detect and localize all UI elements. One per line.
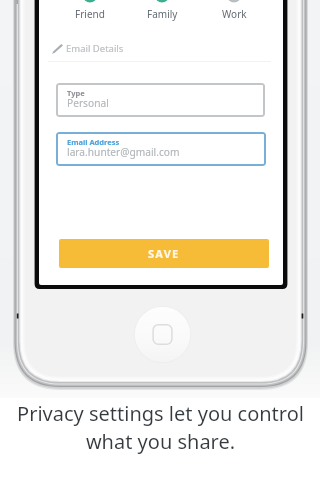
button[interactable]: Home [132,304,193,365]
button[interactable]: Work [204,0,264,20]
staticText: Family [147,7,178,21]
button[interactable]: SAVE [59,239,269,268]
staticText: Type [67,88,85,98]
staticText: Privacy settings let you control what yo… [17,400,304,455]
staticText: SAVE [148,246,180,261]
staticText: Personal [67,96,109,110]
button[interactable]: Friend [60,0,120,20]
staticText: Email Address [67,137,120,147]
staticText: lara.hunter@gmail.com [67,145,180,159]
staticText: Email Details [66,42,124,55]
staticText: Work [222,7,247,21]
button[interactable]: Email Address [56,132,266,166]
button[interactable]: Type [56,83,265,117]
staticText: Friend [75,7,105,21]
button[interactable]: Family [132,0,192,20]
